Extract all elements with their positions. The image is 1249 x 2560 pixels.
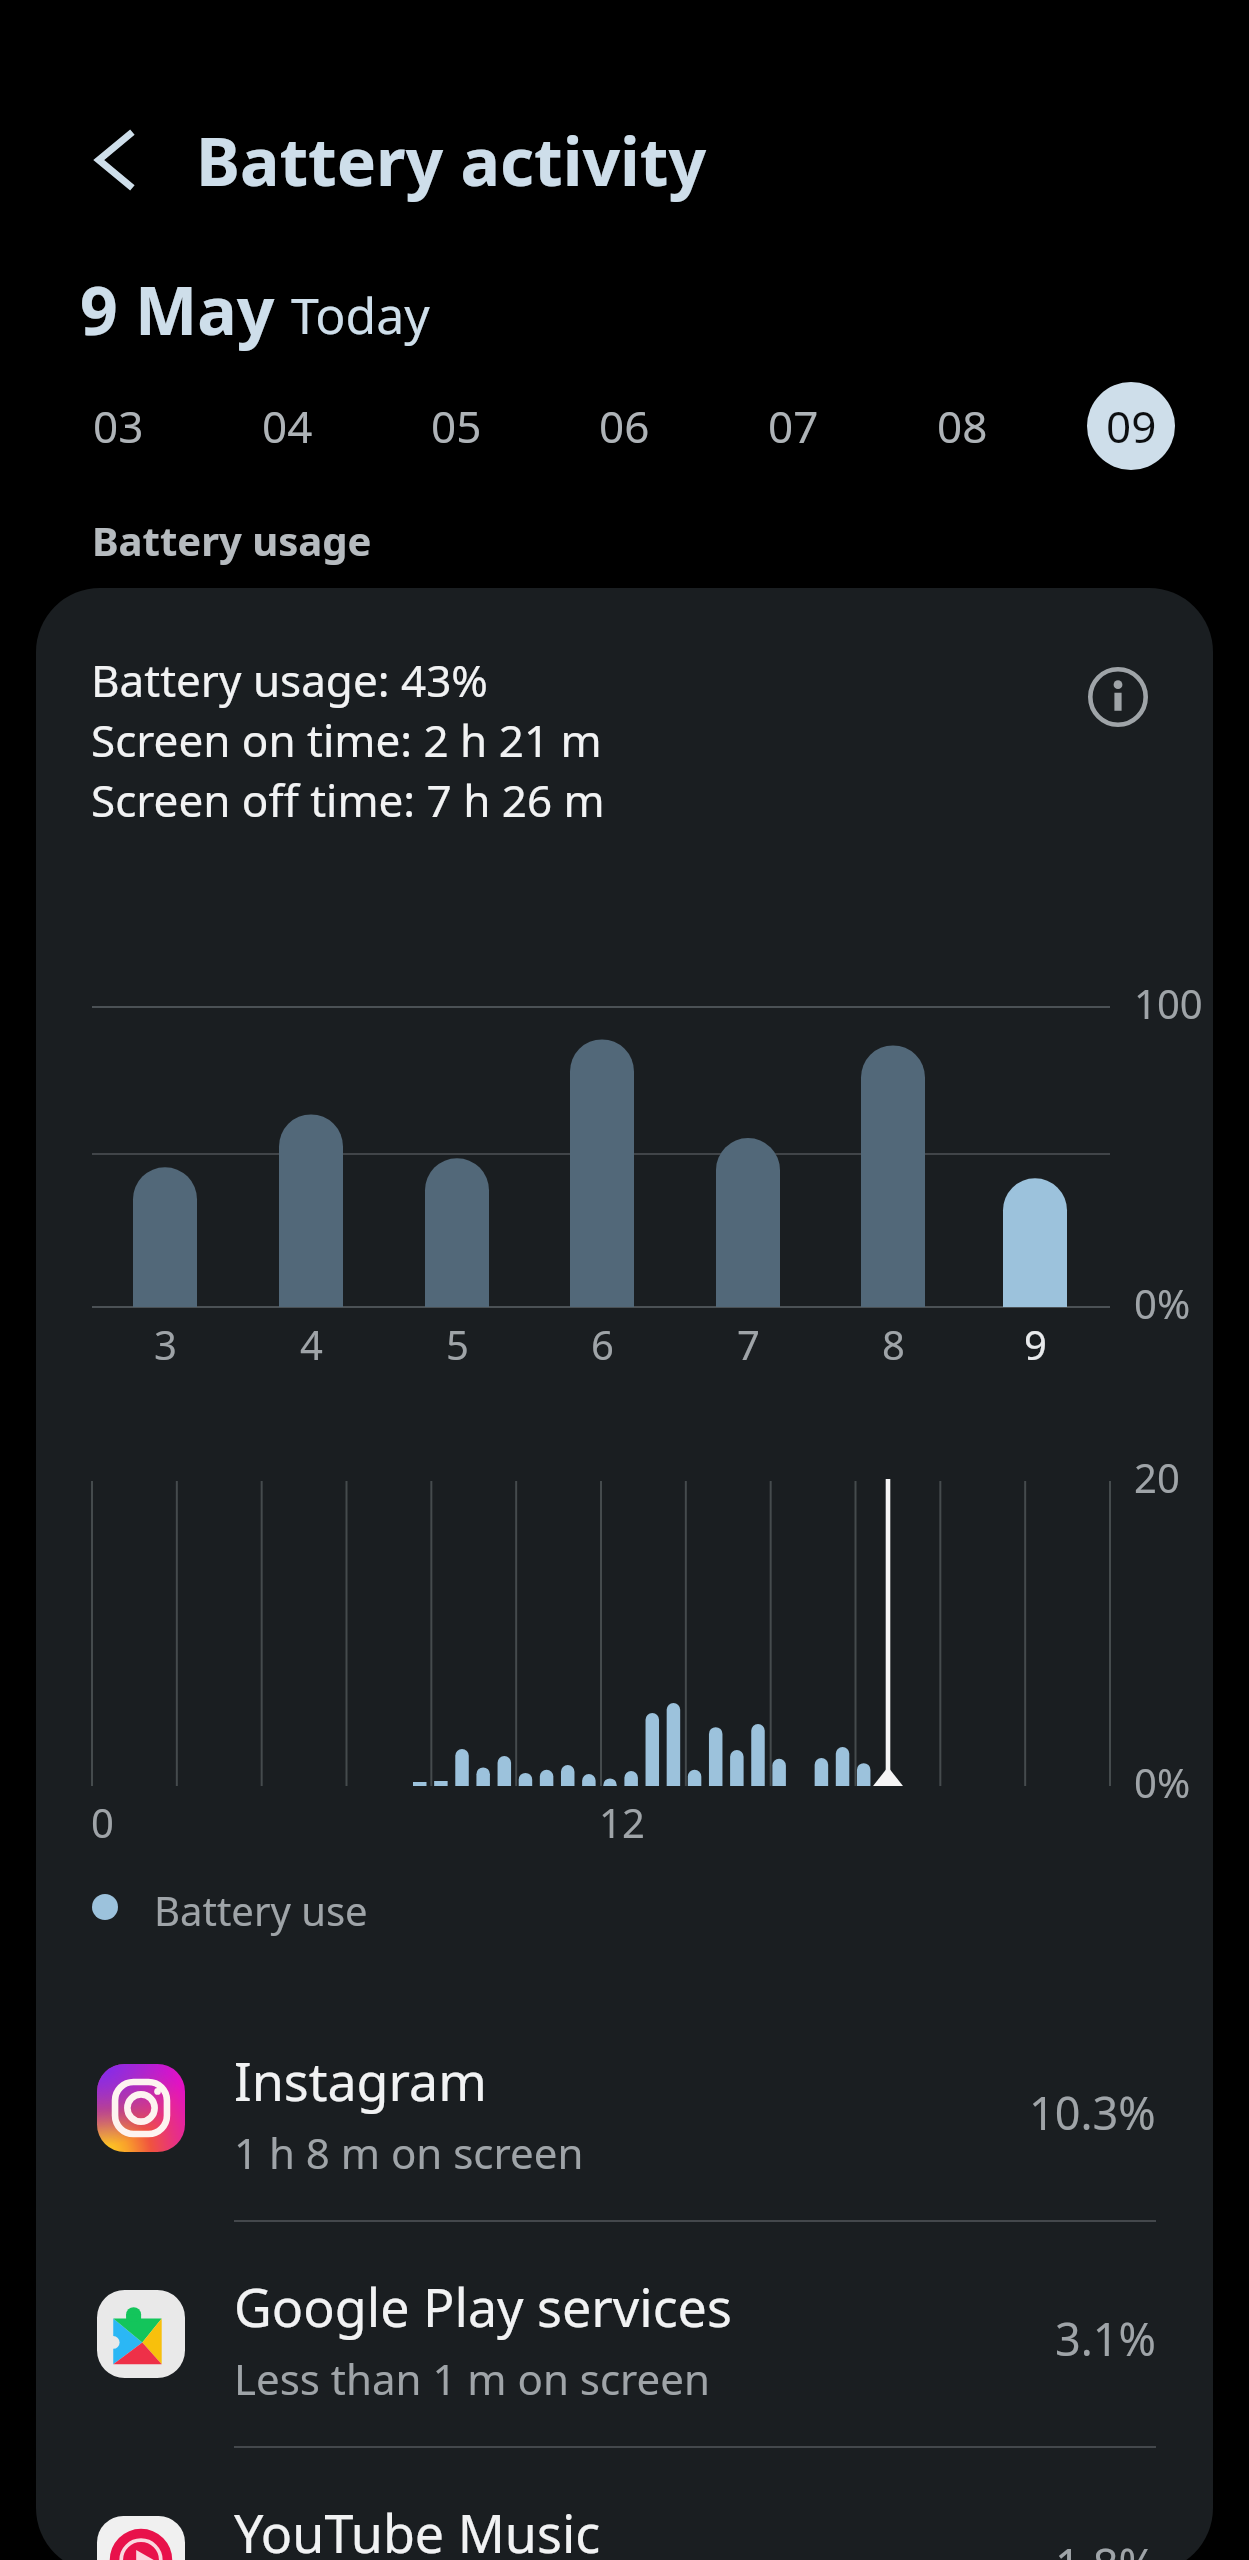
button[interactable]: Information (1076, 655, 1160, 739)
staticText: Less than 1 m on screen (234, 2350, 710, 2407)
staticText: Google Play services (234, 2271, 732, 2342)
button[interactable]: Google Play services (36, 2222, 1213, 2446)
staticText: 9 May (80, 264, 275, 354)
staticText: 07 (768, 396, 819, 456)
staticText: Battery usage: 43% (91, 650, 488, 710)
button[interactable]: 05 (412, 382, 500, 470)
staticText: 08 (937, 396, 988, 456)
staticText: Battery usage (92, 513, 372, 567)
staticText: 1 h 8 m on screen (234, 2124, 584, 2181)
button[interactable]: Instagram (36, 1996, 1213, 2220)
staticText: Screen on time: 2 h 21 m (91, 710, 602, 770)
button[interactable]: 07 (749, 382, 837, 470)
staticText: 6 (591, 1317, 614, 1371)
button[interactable]: 09 (1087, 382, 1175, 470)
staticText: 5 (446, 1317, 469, 1371)
staticText: Battery activity (196, 115, 707, 205)
staticText: 3 (154, 1317, 177, 1371)
staticText: 04 (262, 396, 313, 456)
staticText: Instagram (234, 2045, 487, 2116)
staticText: 20 (1134, 1450, 1180, 1504)
staticText: 09 (1106, 396, 1157, 456)
staticText: 0% (1134, 1755, 1191, 1809)
staticText: Today (291, 281, 430, 349)
staticText: 05 (431, 396, 482, 456)
staticText: 12 (599, 1795, 645, 1849)
staticText: 3.1% (1055, 2308, 1156, 2369)
staticText: 4 (300, 1317, 323, 1371)
button[interactable]: 03 (74, 382, 162, 470)
staticText: 06 (599, 396, 650, 456)
staticText: 7 (737, 1317, 760, 1371)
staticText: Battery use (154, 1883, 368, 1937)
staticText: 100 (1134, 976, 1203, 1030)
button[interactable]: 04 (243, 382, 331, 470)
staticText: 0 (91, 1795, 114, 1849)
staticText: 9 (1024, 1317, 1047, 1371)
button[interactable]: YouTube Music (36, 2448, 1213, 2560)
button[interactable]: 08 (918, 382, 1006, 470)
staticText: 1.8% (1055, 2534, 1156, 2560)
staticText: 10.3% (1029, 2082, 1156, 2143)
staticText: YouTube Music (234, 2497, 601, 2560)
staticText: 03 (93, 396, 144, 456)
staticText: 0% (1134, 1276, 1191, 1330)
button[interactable]: 06 (580, 382, 668, 470)
button[interactable]: Back (70, 115, 160, 205)
staticText: Screen off time: 7 h 26 m (91, 770, 605, 830)
staticText: 8 (882, 1317, 905, 1371)
